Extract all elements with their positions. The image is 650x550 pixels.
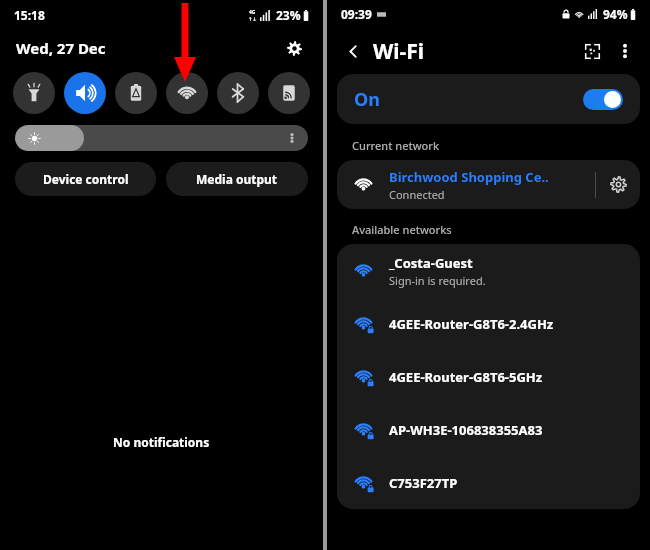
button[interactable]: More options [612,38,638,64]
staticText: AP-WH3E-106838355A83 [389,421,543,439]
button[interactable]: _Costa-Guest [337,244,640,297]
staticText: Current network [352,138,440,153]
button[interactable]: Wi-Fi [166,72,208,114]
staticText: _Costa-Guest [389,254,473,272]
staticText: 4GEE-Router-G8T6-5GHz [389,368,543,386]
button[interactable]: Birchwood Shopping Ce.. [337,160,640,209]
staticText: C753F27TP [389,474,458,492]
staticText: 23% [276,7,301,23]
staticText: Wed, 27 Dec [16,38,106,58]
button[interactable]: 4GEE-Router-G8T6-2.4GHz [337,297,640,350]
staticText: 4GEE-Router-G8T6-2.4GHz [389,315,554,333]
staticText: ↑↓ [248,16,257,22]
staticText: On [354,87,380,112]
button[interactable]: NFC [268,72,310,114]
button[interactable]: Flashlight [13,72,55,114]
button[interactable]: 4GEE-Router-G8T6-5GHz [337,350,640,403]
button[interactable]: Power saving [115,72,157,114]
button[interactable]: Settings [281,35,307,61]
staticText: Sign-in is required. [389,273,486,288]
button[interactable]: Bluetooth [217,72,259,114]
staticText: Connected [389,187,445,202]
staticText: 15:18 [14,7,45,23]
staticText: 94% [603,6,628,22]
button[interactable]: Device control [15,162,156,196]
button[interactable]: AP-WH3E-106838355A83 [337,403,640,456]
button[interactable]: Network settings [596,160,640,209]
staticText: Media output [196,171,278,187]
staticText: No notifications [113,434,210,450]
button[interactable]: C753F27TP [337,456,640,509]
button[interactable]: Back [339,37,367,65]
staticText: 09:39 [341,6,372,22]
staticText: Available networks [352,222,452,237]
button[interactable]: Sound [64,72,106,114]
staticText: Device control [43,171,129,187]
staticText: 4G [249,9,256,16]
button[interactable]: Scan QR code [578,37,606,65]
button[interactable]: Brightness [15,125,308,151]
staticText: Wi-Fi [373,37,425,66]
button[interactable]: On [337,74,640,124]
button[interactable]: Media output [166,162,308,196]
staticText: Birchwood Shopping Ce.. [389,168,549,186]
